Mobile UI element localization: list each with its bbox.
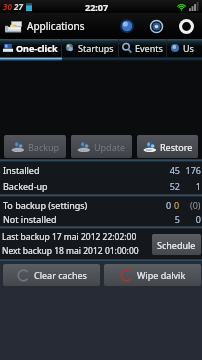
staticText: (0) (190, 199, 201, 211)
staticText: To backup (settings) (3, 199, 88, 211)
button[interactable]: Filter (112, 13, 141, 39)
staticText: Not installed (3, 213, 57, 225)
staticText: 1 (195, 180, 201, 192)
staticText: 0 (195, 213, 201, 225)
button[interactable]: Startups (62, 39, 118, 57)
staticText: Events (135, 42, 163, 54)
staticText: Installed (3, 164, 40, 176)
button[interactable]: Events (119, 39, 166, 57)
button[interactable]: Schedule (152, 234, 201, 255)
staticText: Startups (78, 42, 114, 54)
staticText: 22:07 (85, 1, 109, 13)
staticText: Schedule (157, 239, 196, 251)
button[interactable]: Settings (141, 13, 171, 39)
staticText: 0 (166, 199, 172, 211)
button[interactable]: More options (171, 13, 202, 39)
staticText: 52 (169, 180, 180, 192)
staticText: 0 (174, 199, 180, 211)
staticText: Wipe dalvik (137, 269, 186, 281)
staticText: Backed-up (3, 180, 48, 192)
staticText: 45 (169, 164, 180, 176)
staticText: Next backup 18 mai 2012 01:00:00 (2, 245, 139, 257)
staticText: Update (94, 141, 126, 153)
staticText: Clear caches (34, 269, 87, 281)
staticText: 176 (185, 164, 201, 176)
staticText: Backup (28, 141, 60, 153)
staticText: Us (183, 42, 194, 54)
button[interactable]: Clear caches (3, 264, 100, 286)
button[interactable]: Wipe dalvik (104, 264, 201, 286)
staticText: Last backup 17 mai 2012 22:02:00 (2, 231, 137, 243)
staticText: Applications (27, 19, 85, 33)
staticText: Restore (160, 141, 193, 153)
button[interactable]: One-click (0, 39, 61, 57)
button[interactable]: Us (167, 39, 202, 57)
staticText: 30 (3, 1, 12, 12)
button[interactable]: Restore (137, 135, 198, 158)
staticText: One-click (16, 42, 58, 54)
button[interactable]: Update (71, 135, 132, 158)
staticText: 5 (174, 213, 180, 225)
staticText: 27 (14, 1, 23, 12)
button[interactable]: Backup (4, 135, 66, 158)
